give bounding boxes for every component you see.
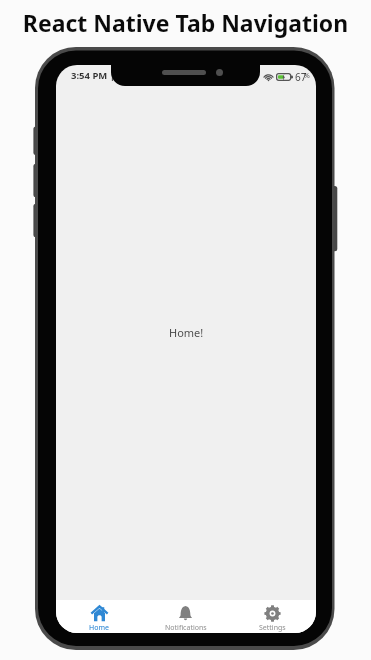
button[interactable]: Home — [56, 600, 142, 633]
staticText: Home — [89, 623, 109, 633]
staticText: % — [304, 71, 310, 81]
staticText: Settings — [259, 623, 286, 633]
staticText: 3:54 PM | 0.2K/s — [71, 69, 147, 82]
staticText: React Native Tab Navigation — [0, 7, 371, 38]
staticText: 67 — [295, 70, 307, 84]
staticText: Home! — [169, 325, 204, 340]
button[interactable]: Notifications — [142, 600, 229, 633]
button[interactable]: Settings — [229, 600, 316, 633]
staticText: Notifications — [165, 623, 207, 633]
